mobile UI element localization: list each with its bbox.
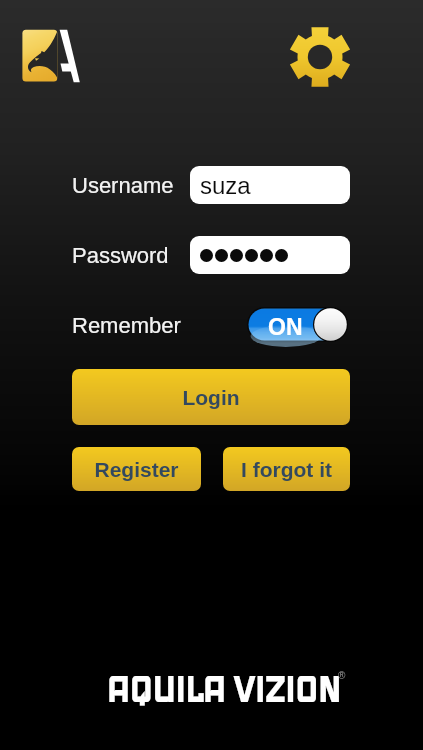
button[interactable]: Settings bbox=[288, 25, 352, 89]
button[interactable]: I forgot it bbox=[223, 447, 350, 491]
staticText: Register bbox=[94, 458, 179, 481]
staticText: I forgot it bbox=[241, 458, 332, 481]
staticText: Remember bbox=[72, 313, 181, 338]
staticText: AQUILA VIZION bbox=[106, 666, 340, 713]
button[interactable]: Register bbox=[72, 447, 201, 491]
staticText: Username bbox=[72, 173, 174, 198]
button[interactable]: Login bbox=[72, 369, 350, 425]
button[interactable]: Remember me, on bbox=[247, 307, 348, 342]
staticText: Login bbox=[182, 386, 240, 409]
staticText: ON bbox=[268, 314, 303, 340]
button[interactable]: suza bbox=[190, 166, 350, 204]
staticText: ® bbox=[338, 670, 346, 681]
button[interactable]: Aquila Vizion logo bbox=[12, 24, 88, 100]
staticText: Password bbox=[72, 243, 169, 268]
button[interactable] bbox=[190, 236, 350, 274]
staticText: suza bbox=[200, 172, 251, 199]
